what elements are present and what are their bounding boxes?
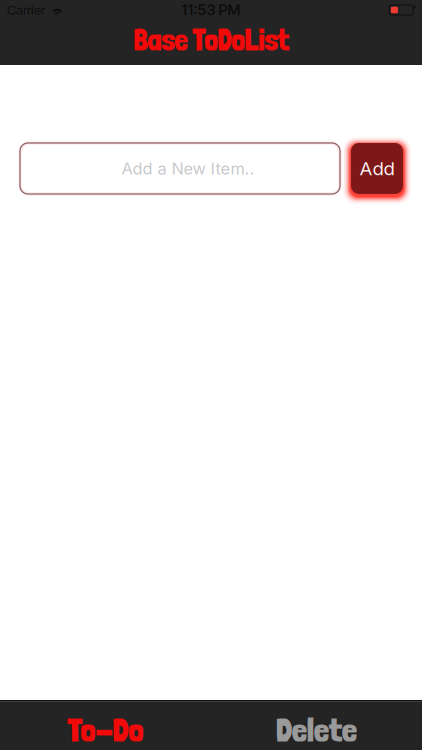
staticText: Add a New Item.. (121, 159, 254, 178)
button[interactable]: Delete (211, 701, 422, 750)
staticText: 11:53 PM (181, 1, 240, 19)
staticText: Delete (276, 710, 357, 749)
staticText: To-Do (67, 710, 143, 749)
button[interactable]: To-Do (0, 701, 211, 750)
staticText: Carrier (7, 2, 45, 18)
staticText: Base ToDoList (133, 22, 288, 57)
staticText: Add (359, 157, 394, 180)
button[interactable]: Add (351, 143, 403, 194)
